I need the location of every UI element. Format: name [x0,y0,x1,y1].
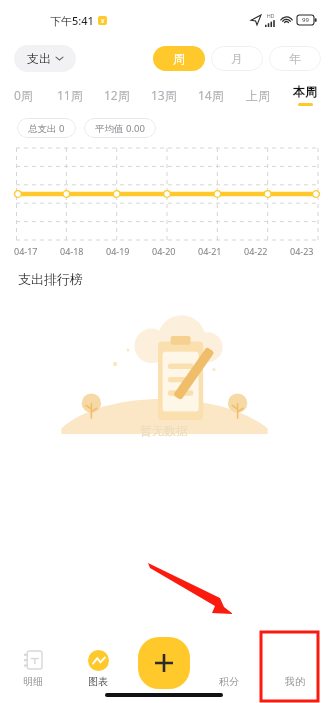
button[interactable]: 本周 [281,80,328,110]
staticText: 图表 [88,675,108,688]
staticText: 平均值 0.00 [95,122,145,135]
button[interactable]: 11周 [46,80,93,110]
staticText: 支出 [27,51,51,66]
staticText: 明细 [23,675,43,688]
staticText: 月 [231,51,243,66]
button[interactable]: 13周 [140,80,187,110]
button[interactable]: 我的 [262,633,328,703]
staticText: 支出排行榜 [18,271,83,287]
button[interactable]: 上周 [234,80,281,110]
button[interactable]: 14周 [187,80,234,110]
staticText: 本周 [293,84,317,99]
button[interactable]: Add record [138,637,190,689]
staticText: 积分 [219,675,239,688]
button[interactable]: 图表 [65,633,130,703]
staticText: 总支出 0 [28,122,65,135]
staticText: 周 [173,51,185,66]
staticText: 暂无数据 [140,423,188,438]
staticText: 年 [289,51,301,66]
button[interactable]: 明细 [0,633,65,703]
button[interactable]: 12周 [93,80,140,110]
staticText: ¥ [101,17,105,25]
staticText: 13周 [151,87,177,103]
staticText: 04-22 [244,245,268,257]
staticText: 下午5:41 [50,13,94,28]
staticText: 04-21 [198,245,222,257]
button[interactable]: 月 [211,46,263,71]
button[interactable]: 0周 [0,80,46,110]
button[interactable]: 平均值 0.00 [84,118,156,138]
button[interactable]: 支出 [14,45,76,72]
staticText: 04-19 [106,245,130,257]
staticText: 上周 [246,88,270,103]
staticText: 04-20 [152,245,176,257]
staticText: 我的 [285,675,305,688]
button[interactable]: 年 [269,46,321,71]
staticText: 04-18 [60,245,84,257]
staticText: 12周 [104,87,130,103]
staticText: 04-23 [290,245,314,257]
staticText: 0周 [14,87,33,103]
button[interactable]: 总支出 0 [17,118,76,138]
staticText: 14周 [198,87,224,103]
button[interactable]: 积分 [196,633,262,703]
button[interactable]: 周 [153,46,205,71]
staticText: 99 [302,16,309,24]
staticText: HD [267,13,275,20]
staticText: 04-17 [14,245,38,257]
staticText: 11周 [57,87,83,103]
